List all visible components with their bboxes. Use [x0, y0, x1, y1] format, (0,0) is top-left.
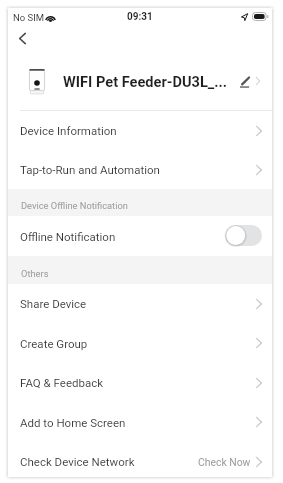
staticText: WIFI Pet Feeder-DU3L_...	[63, 73, 228, 90]
staticText: Add to Home Screen	[20, 416, 126, 429]
staticText: Offline Notification	[20, 230, 116, 243]
staticText: Check Device Network	[20, 455, 135, 468]
staticText: Device Offline Notification	[21, 200, 128, 211]
staticText: Tap-to-Run and Automation	[20, 163, 160, 176]
staticText: 09:31	[127, 11, 153, 23]
button[interactable]: Add to Home Screen	[8, 402, 272, 442]
staticText: Others	[21, 268, 49, 279]
button[interactable]: Create Group	[8, 323, 272, 363]
button[interactable]: Check Device Network	[8, 442, 272, 477]
button[interactable]: Back	[10, 26, 34, 50]
staticText: Device Information	[20, 124, 117, 137]
button[interactable]: Edit name	[237, 74, 253, 90]
staticText: Check Now	[198, 456, 251, 468]
button[interactable]: WIFI Pet Feeder-DU3L_...	[8, 58, 272, 110]
button[interactable]: FAQ & Feedback	[8, 363, 272, 402]
staticText: No SIM	[13, 12, 45, 23]
staticText: FAQ & Feedback	[20, 376, 104, 389]
button[interactable]: Share Device	[8, 284, 272, 323]
button[interactable]: Device Information	[8, 111, 272, 150]
button[interactable]: Offline Notification	[8, 216, 272, 256]
button[interactable]: Offline Notification toggle	[225, 225, 262, 246]
staticText: Create Group	[20, 337, 88, 350]
button[interactable]: Tap-to-Run and Automation	[8, 150, 272, 189]
staticText: Share Device	[20, 297, 87, 310]
